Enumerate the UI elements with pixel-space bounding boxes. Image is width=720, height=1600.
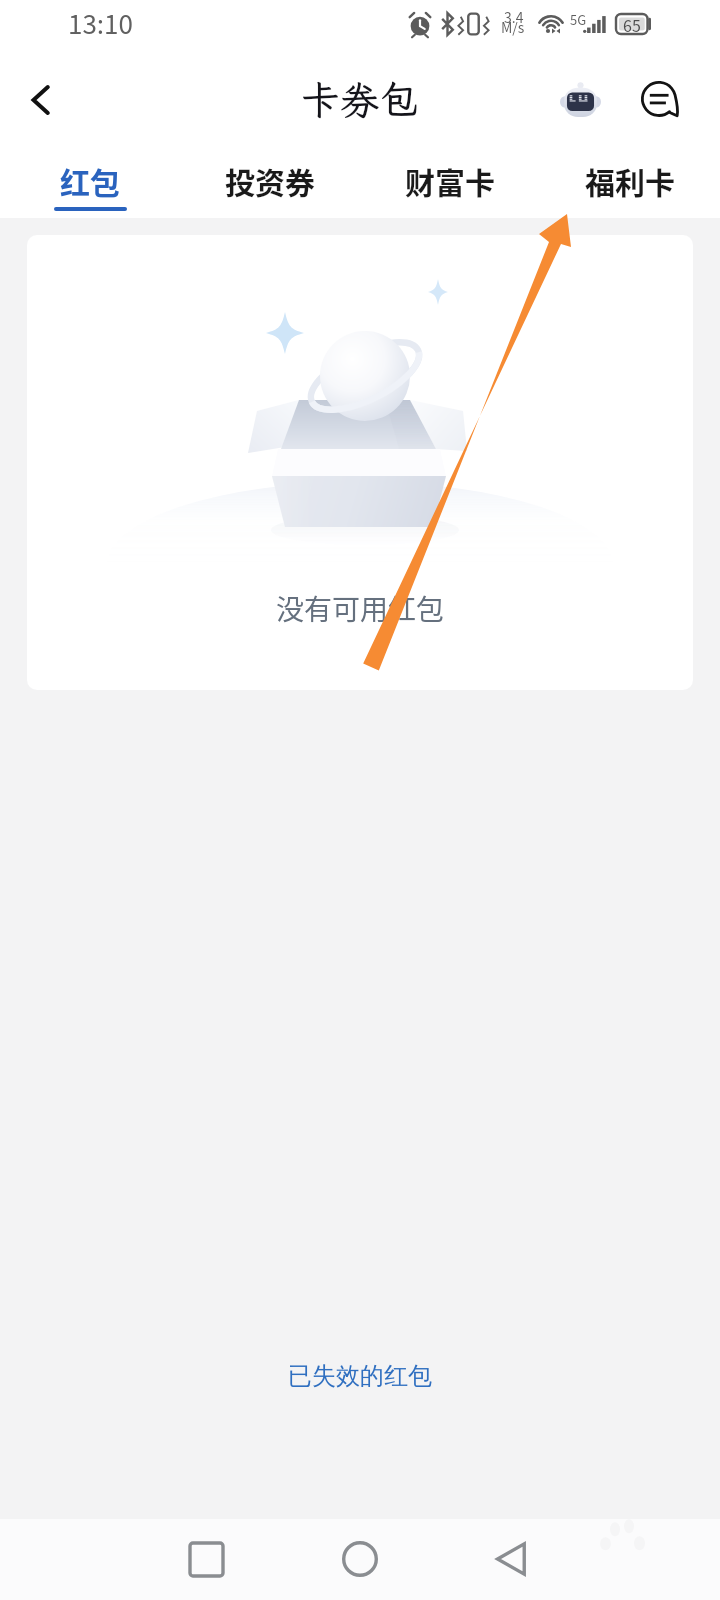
button[interactable]: 财富卡 — [360, 145, 540, 218]
staticText: 5G — [570, 10, 587, 29]
button[interactable]: 福利卡 — [540, 145, 720, 218]
button[interactable]: Back — [472, 1519, 552, 1599]
button[interactable]: Home — [320, 1519, 400, 1599]
staticText: 投资券 — [225, 159, 315, 202]
button[interactable]: 已失效的红包 — [288, 1361, 432, 1391]
button[interactable]: 投资券 — [180, 145, 360, 218]
staticText: 已失效的红包 — [288, 1361, 432, 1391]
staticText: 13:10 — [68, 4, 133, 42]
button[interactable]: AI assistant — [552, 72, 608, 128]
button[interactable]: Customer service — [632, 72, 688, 128]
staticText: M/s — [501, 17, 525, 37]
staticText: 红包 — [60, 159, 120, 202]
button[interactable]: Recents — [166, 1519, 246, 1599]
button[interactable]: 红包 — [0, 145, 180, 218]
staticText: 财富卡 — [405, 159, 495, 202]
staticText: 3.4 — [504, 7, 524, 27]
staticText: 福利卡 — [585, 159, 675, 202]
staticText: 65 — [623, 13, 641, 35]
staticText: 卡券包 — [301, 74, 419, 125]
button[interactable]: Back — [10, 69, 72, 131]
staticText: 没有可用红包 — [276, 588, 445, 629]
